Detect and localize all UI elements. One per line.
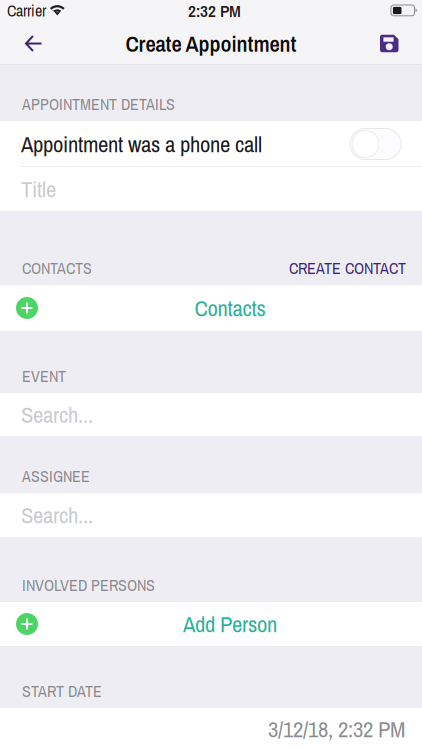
staticText: 3/12/18, 2:32 PM	[268, 714, 405, 744]
button[interactable]: Appointment was a phone call	[350, 128, 401, 159]
staticText: CREATE CONTACT	[289, 257, 406, 279]
staticText: Search...	[21, 399, 93, 430]
staticText: APPOINTMENT DETAILS	[22, 93, 175, 115]
staticText: Create Appointment	[125, 28, 296, 59]
staticText: Appointment was a phone call	[21, 129, 262, 159]
button[interactable]: Add Person	[0, 602, 422, 646]
staticText: Add Person	[183, 609, 277, 639]
button[interactable]: CREATE CONTACT	[289, 257, 406, 279]
button[interactable]: Save	[380, 22, 422, 65]
button[interactable]: Back	[0, 22, 42, 65]
staticText: EVENT	[22, 365, 66, 387]
staticText: 2:32 PM	[188, 0, 241, 22]
staticText: INVOLVED PERSONS	[22, 574, 155, 596]
staticText: Carrier	[7, 0, 46, 22]
staticText: CONTACTS	[22, 257, 92, 279]
staticText: Title	[21, 174, 56, 204]
staticText: Contacts	[194, 293, 265, 323]
button[interactable]: Contacts	[0, 285, 422, 331]
staticText: ASSIGNEE	[22, 465, 90, 487]
staticText: Search...	[21, 500, 93, 530]
staticText: START DATE	[22, 680, 102, 702]
button[interactable]: 3/12/18, 2:32 PM	[0, 708, 422, 750]
